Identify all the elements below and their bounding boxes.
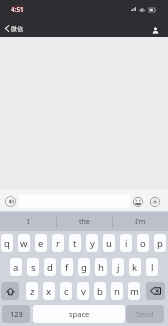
- button[interactable]: Backspace: [146, 282, 165, 300]
- button[interactable]: b: [94, 282, 106, 300]
- button[interactable]: x: [43, 282, 55, 300]
- button[interactable]: n: [111, 282, 123, 300]
- staticText: r: [56, 237, 60, 250]
- staticText: y: [90, 237, 95, 250]
- button[interactable]: r: [52, 234, 64, 252]
- button[interactable]: y: [86, 234, 98, 252]
- staticText: e: [38, 237, 44, 250]
- button[interactable]: Voice message: [5, 196, 16, 207]
- staticText: h: [98, 261, 104, 274]
- button[interactable]: s: [27, 258, 39, 276]
- staticText: g: [81, 261, 87, 274]
- button[interactable]: Emoji: [132, 196, 143, 207]
- button[interactable]: I'm: [112, 212, 168, 231]
- button[interactable]: 123: [2, 305, 30, 323]
- staticText: k: [132, 261, 138, 274]
- staticText: b: [97, 285, 103, 298]
- button[interactable]: 微信: [2, 21, 23, 36]
- staticText: x: [46, 285, 52, 298]
- button[interactable]: Chat info: [148, 23, 162, 37]
- button[interactable]: i: [120, 234, 132, 252]
- button[interactable]: d: [44, 258, 56, 276]
- staticText: j: [117, 261, 120, 274]
- staticText: 4:51: [11, 5, 24, 13]
- staticText: p: [157, 237, 163, 250]
- staticText: m: [130, 285, 139, 298]
- button[interactable]: k: [129, 258, 141, 276]
- button[interactable]: g: [78, 258, 90, 276]
- staticText: s: [31, 261, 36, 274]
- button[interactable]: t: [69, 234, 81, 252]
- button[interactable]: Shift: [1, 282, 19, 300]
- staticText: o: [140, 237, 146, 250]
- button[interactable]: u: [103, 234, 115, 252]
- button[interactable]: c: [60, 282, 72, 300]
- staticText: f: [65, 261, 69, 274]
- staticText: n: [114, 285, 120, 298]
- staticText: t: [73, 237, 77, 250]
- button[interactable]: l: [146, 258, 158, 276]
- staticText: u: [106, 237, 112, 250]
- staticText: c: [64, 285, 69, 298]
- staticText: q: [4, 237, 10, 250]
- button[interactable]: the: [56, 212, 112, 231]
- staticText: a: [13, 261, 19, 274]
- staticText: 123: [10, 309, 23, 319]
- button[interactable]: a: [10, 258, 22, 276]
- button[interactable]: z: [26, 282, 38, 300]
- staticText: d: [47, 261, 53, 274]
- staticText: w: [20, 237, 28, 250]
- button[interactable]: j: [112, 258, 124, 276]
- staticText: i: [125, 237, 128, 250]
- staticText: I: [27, 217, 30, 227]
- staticText: z: [30, 285, 35, 298]
- button[interactable]: Send: [126, 305, 164, 323]
- button[interactable]: e: [35, 234, 47, 252]
- button[interactable]: h: [95, 258, 107, 276]
- button[interactable]: m: [128, 282, 140, 300]
- staticText: Send: [136, 309, 154, 319]
- button[interactable]: More options: [149, 196, 160, 207]
- staticText: l: [151, 261, 154, 274]
- button[interactable]: w: [18, 234, 30, 252]
- staticText: 微信: [11, 25, 23, 33]
- staticText: I'm: [135, 217, 146, 227]
- button[interactable]: I: [0, 212, 56, 231]
- staticText: space: [69, 309, 90, 319]
- button[interactable]: v: [77, 282, 89, 300]
- button[interactable]: space: [33, 305, 125, 323]
- button[interactable]: o: [137, 234, 149, 252]
- button[interactable]: q: [1, 234, 13, 252]
- staticText: the: [79, 217, 90, 227]
- button[interactable]: f: [61, 258, 73, 276]
- button[interactable]: p: [154, 234, 166, 252]
- staticText: v: [81, 285, 86, 298]
